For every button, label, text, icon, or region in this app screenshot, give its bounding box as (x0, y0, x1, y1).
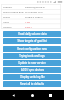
staticText: Display units log file (20, 75, 45, 79)
button[interactable]: Reset all to defaults (3, 81, 61, 87)
staticText: STANDARD 32.0 (25, 10, 43, 13)
staticText: Profile 2 Code 0 (25, 15, 43, 18)
button[interactable]: Support (0, 4, 64, 9)
staticText: Show targets of goal list (17, 39, 47, 43)
staticText: Select criteria goal (3, 10, 24, 13)
staticText: 1.00 (25, 20, 30, 23)
staticText: Units (3, 20, 9, 23)
staticText: Status (3, 15, 11, 18)
button[interactable]: Status bar (0, 0, 64, 4)
button[interactable]: Reset configuration now (3, 46, 61, 52)
staticText: Version (3, 25, 12, 28)
button[interactable]: Status (0, 14, 64, 19)
button[interactable]: Update to new version (3, 60, 61, 66)
button[interactable]: Show targets of goal list (3, 38, 61, 44)
staticText: Update to new version (18, 61, 46, 65)
button[interactable]: Trying tools and logs (3, 53, 61, 59)
staticText: Reset configuration now (17, 47, 47, 51)
staticText: Trying tools and logs (19, 54, 45, 58)
staticText: 3.28.1 (25, 25, 32, 28)
button[interactable]: Recent apps (45, 90, 56, 100)
staticText: Support (3, 5, 13, 8)
button[interactable]: ADD / sync devices (3, 67, 61, 73)
button[interactable]: Units (0, 19, 64, 24)
button[interactable]: Select criteria goal (0, 9, 64, 14)
button[interactable]: Back (8, 90, 19, 100)
button[interactable]: Read daily volume data (3, 31, 61, 37)
staticText: support@acme.io (25, 5, 45, 8)
staticText: Reset all to defaults (20, 82, 44, 86)
button[interactable]: Home (27, 90, 38, 100)
button[interactable]: Version (0, 24, 64, 29)
staticText: ADD / sync devices (21, 68, 44, 72)
button[interactable]: Display units log file (3, 74, 61, 80)
staticText: Read daily volume data (18, 32, 47, 36)
